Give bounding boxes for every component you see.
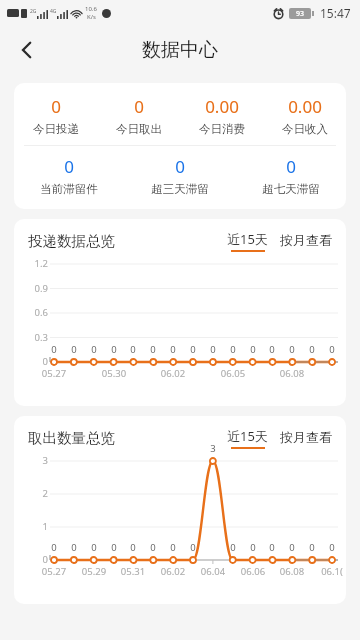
staticText: 0 — [45, 541, 63, 554]
button[interactable]: 0 — [97, 94, 180, 137]
staticText: 0 — [184, 541, 202, 554]
staticText: 0 — [45, 343, 63, 356]
staticText: 0.00 — [205, 95, 239, 118]
staticText: 0 — [124, 343, 142, 356]
staticText: 当前滞留件 — [40, 182, 98, 196]
staticText: 超三天滞留 — [151, 182, 209, 196]
staticText: 05.30 — [95, 367, 133, 380]
staticText: 0 — [224, 343, 242, 356]
staticText: 0 — [124, 541, 142, 554]
staticText: 06.05 — [214, 367, 252, 380]
staticText: 06.02 — [154, 367, 192, 380]
staticText: 3 — [204, 442, 222, 455]
button[interactable]: 近15天 — [227, 230, 268, 252]
staticText: 0 — [64, 155, 74, 178]
staticText: 1 — [18, 520, 48, 533]
staticText: 0.3 — [18, 331, 48, 344]
button[interactable]: 0.00 — [263, 94, 346, 137]
staticText: 0 — [65, 541, 83, 554]
staticText: 数据中心 — [142, 38, 218, 62]
staticText: 0 — [303, 343, 321, 356]
staticText: 05.29 — [75, 565, 113, 578]
staticText: 0 — [51, 95, 61, 118]
staticText: 今日投递 — [33, 122, 79, 136]
staticText: 0.9 — [18, 282, 48, 295]
staticText: 0 — [85, 343, 103, 356]
staticText: 05.27 — [35, 367, 73, 380]
staticText: 0 — [105, 343, 123, 356]
staticText: 06.06 — [234, 565, 272, 578]
staticText: 0 — [283, 541, 301, 554]
staticText: 06.04 — [194, 565, 232, 578]
staticText: 投递数据总览 — [28, 232, 115, 250]
staticText: 0 — [18, 355, 48, 368]
staticText: 06.1( — [313, 565, 346, 578]
staticText: 0.00 — [288, 95, 322, 118]
staticText: 0 — [18, 553, 48, 566]
staticText: 0 — [184, 343, 202, 356]
staticText: 今日收入 — [282, 122, 328, 136]
staticText: 0 — [244, 343, 262, 356]
staticText: 今日取出 — [116, 122, 162, 136]
staticText: 0 — [175, 155, 185, 178]
staticText: 0 — [263, 541, 281, 554]
button[interactable]: 0 — [124, 154, 235, 197]
staticText: 0 — [263, 343, 281, 356]
staticText: 06.08 — [273, 367, 311, 380]
staticText: 取出数量总览 — [28, 429, 115, 447]
staticText: 0 — [144, 343, 162, 356]
staticText: 超七天滞留 — [262, 182, 320, 196]
button[interactable]: 0.00 — [180, 94, 263, 137]
staticText: 0 — [244, 541, 262, 554]
button[interactable]: 近15天 — [227, 427, 268, 449]
staticText: 0 — [323, 343, 341, 356]
staticText: 0 — [164, 343, 182, 356]
staticText: 按月查看 — [280, 232, 332, 248]
staticText: 0 — [164, 541, 182, 554]
button[interactable]: 0 — [14, 94, 97, 137]
staticText: 按月查看 — [280, 429, 332, 445]
button[interactable]: 按月查看 — [280, 232, 332, 251]
staticText: 05.27 — [35, 565, 73, 578]
staticText: 93 — [296, 9, 305, 19]
staticText: 06.02 — [154, 565, 192, 578]
staticText: 0 — [283, 343, 301, 356]
staticText: 0 — [224, 541, 242, 554]
staticText: 0 — [323, 541, 341, 554]
staticText: 10.6 — [85, 5, 97, 13]
staticText: 0 — [105, 541, 123, 554]
staticText: 0 — [303, 541, 321, 554]
staticText: 0 — [144, 541, 162, 554]
staticText: 2G — [30, 8, 37, 15]
staticText: 1.2 — [18, 257, 48, 270]
button[interactable]: 返回 — [5, 28, 49, 72]
staticText: 0.6 — [18, 306, 48, 319]
staticText: K/s — [87, 13, 96, 21]
staticText: 05.31 — [114, 565, 152, 578]
staticText: 近15天 — [227, 427, 268, 445]
button[interactable]: 0 — [14, 154, 124, 197]
staticText: 3 — [18, 454, 48, 467]
staticText: 0 — [134, 95, 144, 118]
button[interactable]: 0 — [235, 154, 346, 197]
button[interactable]: 按月查看 — [280, 429, 332, 448]
staticText: 0 — [85, 541, 103, 554]
staticText: 4G — [50, 8, 57, 15]
staticText: 06.08 — [273, 565, 311, 578]
staticText: 0 — [286, 155, 296, 178]
staticText: 0 — [65, 343, 83, 356]
staticText: 2 — [18, 487, 48, 500]
staticText: 0 — [204, 343, 222, 356]
staticText: 今日消费 — [199, 122, 245, 136]
staticText: 15:47 — [320, 5, 351, 21]
staticText: 近15天 — [227, 230, 268, 248]
